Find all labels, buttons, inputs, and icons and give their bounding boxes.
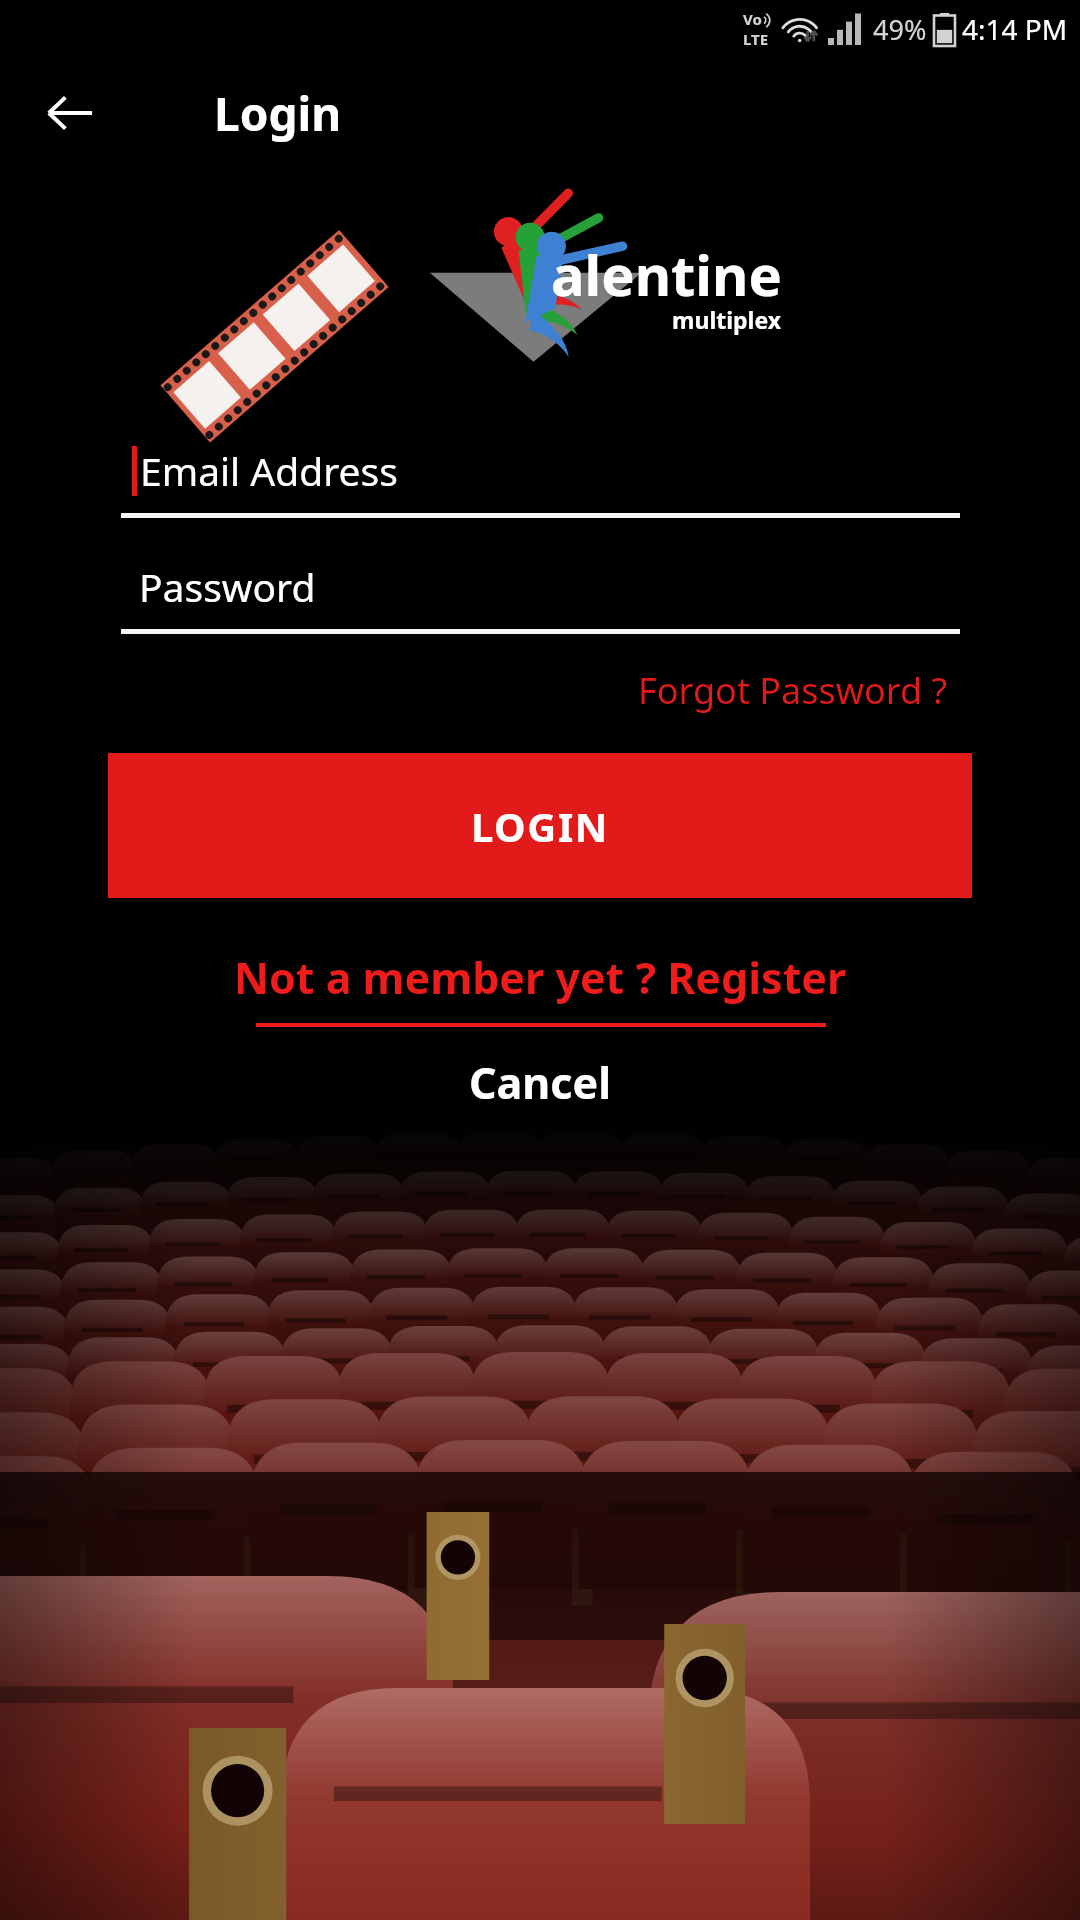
- button[interactable]: Forgot Password ?: [630, 658, 956, 723]
- staticText: multiplex: [672, 304, 782, 335]
- button[interactable]: Email Address: [121, 444, 960, 518]
- staticText: Password: [139, 560, 316, 613]
- staticText: Forgot Password ?: [638, 666, 948, 715]
- staticText: Login: [214, 82, 342, 145]
- button[interactable]: Password: [121, 560, 960, 634]
- staticText: 4:14 PM: [962, 10, 1068, 48]
- staticText: Not a member yet ? Register: [234, 948, 847, 1007]
- staticText: Cancel: [469, 1053, 611, 1112]
- button[interactable]: LOGIN: [108, 753, 972, 898]
- staticText: Vo: [743, 9, 762, 29]
- staticText: alentine: [551, 236, 782, 312]
- button[interactable]: Cancel: [457, 1041, 623, 1124]
- staticText: Email Address: [140, 444, 398, 497]
- button[interactable]: Back: [30, 73, 110, 153]
- staticText: 49%: [873, 11, 927, 48]
- staticText: LOGIN: [471, 799, 609, 853]
- button[interactable]: Not a member yet ? Register: [234, 948, 847, 1027]
- staticText: LTE: [743, 29, 769, 49]
